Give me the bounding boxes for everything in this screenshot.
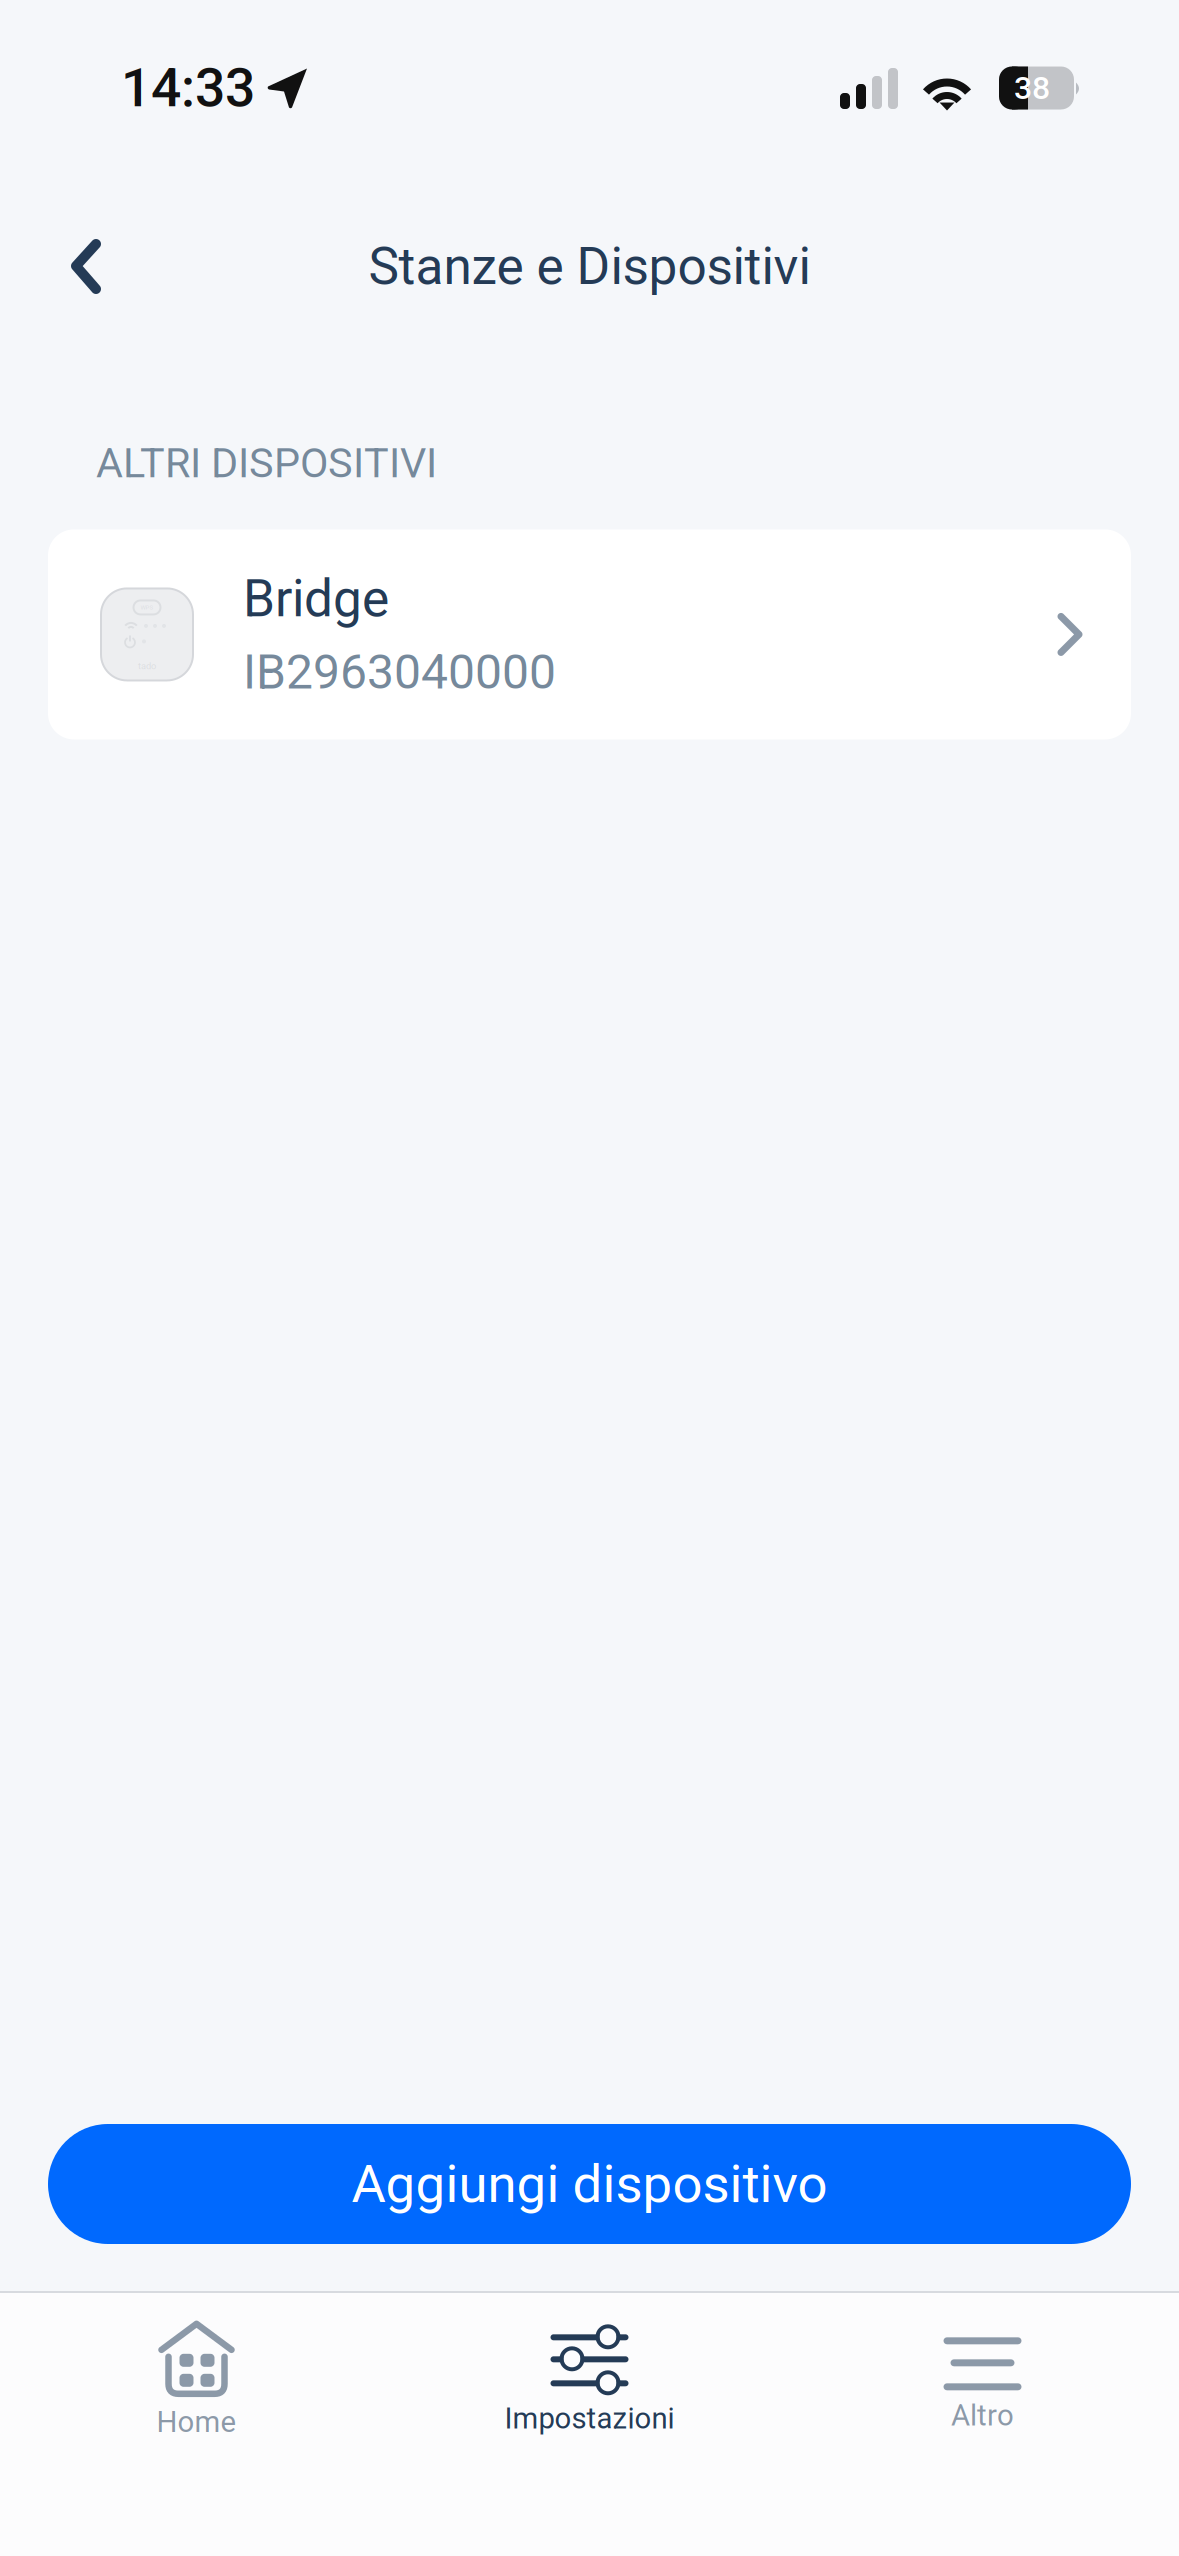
staticText: Impostazioni [504, 2401, 674, 2436]
staticText: tado [138, 660, 156, 671]
button[interactable]: Home [0, 2293, 393, 2556]
staticText: WPS [140, 604, 153, 611]
staticText: 38 [1014, 69, 1050, 107]
button[interactable]: Impostazioni [393, 2293, 786, 2556]
staticText: ALTRI DISPOSITIVI [96, 439, 437, 487]
staticText: Stanze e Dispositivi [368, 236, 810, 297]
staticText: Altro [951, 2398, 1014, 2433]
staticText: IB2963040000 [243, 644, 556, 700]
button[interactable]: Aggiungi dispositivo [48, 2124, 1131, 2244]
staticText: 14:33 [121, 57, 255, 119]
staticText: Home [156, 2405, 236, 2439]
button[interactable]: Back [0, 210, 142, 323]
staticText: Aggiungi dispositivo [351, 2153, 827, 2215]
button[interactable]: Altro [786, 2293, 1179, 2556]
staticText: Bridge [243, 569, 389, 629]
button[interactable]: WPS [48, 529, 1131, 739]
